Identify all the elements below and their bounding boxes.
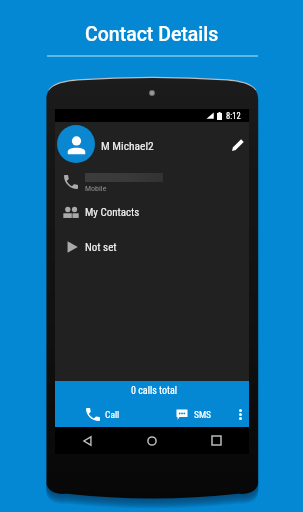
staticText: Contact Details [85, 23, 219, 43]
staticText: Not set [85, 241, 117, 254]
staticText: 8:12 [226, 111, 241, 121]
staticText: 0 calls total [131, 385, 178, 397]
button[interactable]: SMS [176, 400, 238, 428]
staticText: Call [105, 409, 120, 420]
staticText: Mobile [85, 184, 107, 193]
button[interactable]: Back [55, 427, 119, 454]
staticText: My Contacts [85, 206, 140, 219]
button[interactable]: Recent apps [184, 427, 249, 454]
staticText: M Michael2 [101, 139, 154, 152]
staticText: SMS [194, 409, 212, 420]
button[interactable]: Call [86, 400, 158, 428]
button[interactable] [55, 235, 249, 260]
button[interactable]: More options [229, 400, 251, 428]
button[interactable] [55, 123, 249, 165]
button[interactable]: Edit contact [224, 130, 252, 158]
button[interactable]: Home [119, 427, 184, 454]
button[interactable] [55, 200, 249, 225]
button[interactable] [55, 168, 249, 198]
